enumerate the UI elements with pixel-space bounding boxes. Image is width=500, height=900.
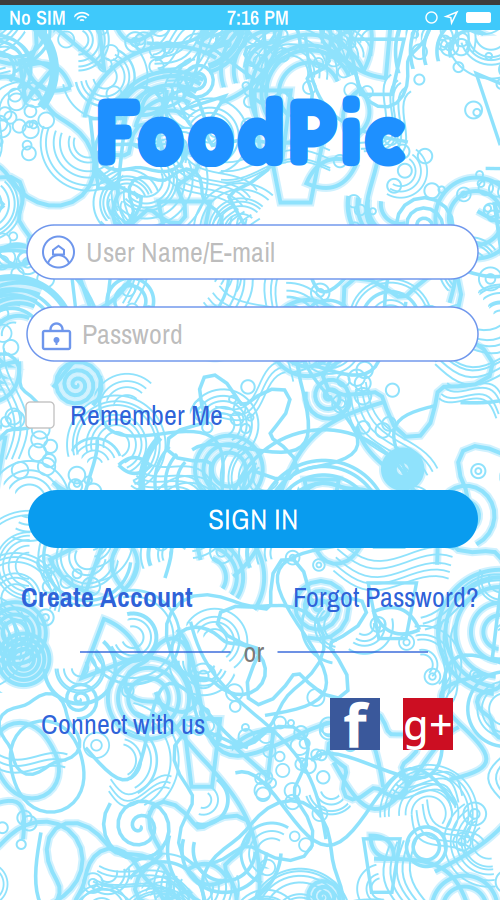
staticText: FoodPic	[93, 72, 407, 188]
button[interactable]: Forgot Password?	[293, 578, 479, 616]
staticText: Create Account	[21, 578, 193, 616]
button[interactable]: SIGN IN	[28, 490, 478, 548]
staticText: Remember Me	[70, 396, 223, 434]
staticText: 7:16 PM	[227, 4, 289, 31]
staticText: User Name/E-mail	[86, 233, 275, 271]
staticText: f	[343, 683, 367, 765]
button[interactable]: Sign in with Facebook	[330, 698, 380, 750]
staticText: or	[243, 633, 264, 671]
staticText: Forgot Password?	[293, 578, 479, 616]
staticText: Connect with us	[41, 705, 205, 743]
button[interactable]: Create Account	[21, 578, 193, 616]
staticText: No SIM	[9, 4, 66, 31]
button[interactable]: Remember Me	[26, 398, 326, 432]
staticText: g+	[403, 697, 453, 751]
staticText: Password	[82, 315, 183, 353]
staticText: SIGN IN	[208, 499, 298, 539]
button[interactable]: Sign in with Google Plus	[403, 698, 453, 750]
